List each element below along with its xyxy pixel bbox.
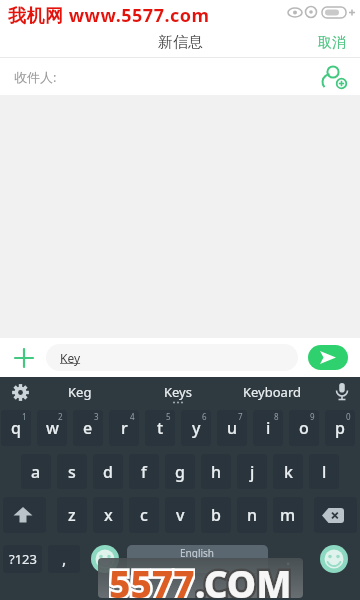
staticText: 取消 [318, 34, 346, 52]
staticText: m [280, 504, 296, 526]
staticText: t [157, 417, 164, 439]
staticText: g [175, 461, 185, 483]
button[interactable] [308, 345, 348, 370]
staticText: z [68, 504, 76, 526]
staticText: w [46, 417, 59, 439]
button[interactable]: Keg [52, 377, 108, 406]
staticText: 新信息 [158, 33, 203, 52]
staticText: u [227, 417, 238, 439]
staticText: l [322, 461, 327, 483]
button[interactable]: p [322, 406, 358, 450]
button[interactable]: j [234, 450, 270, 493]
button[interactable]: s [54, 450, 90, 493]
button[interactable]: Key [46, 344, 298, 371]
button[interactable]: c [126, 493, 162, 537]
staticText: b [211, 504, 221, 526]
staticText: English [180, 546, 215, 560]
staticText: .COM [195, 558, 292, 598]
button[interactable]: y [178, 406, 214, 450]
button[interactable]: ?123 [0, 537, 45, 581]
staticText: d [103, 461, 113, 483]
staticText: 0 [346, 411, 351, 422]
staticText: 3 [94, 411, 99, 422]
button[interactable]: a [18, 450, 54, 493]
staticText: 6 [202, 411, 207, 422]
button[interactable]: t [142, 406, 178, 450]
button[interactable]: n [234, 493, 270, 537]
staticText: Keyboard [243, 383, 302, 401]
button[interactable]: e [70, 406, 106, 450]
staticText: y [192, 417, 201, 439]
button[interactable]: z [54, 493, 90, 537]
staticText: 5577 [109, 558, 195, 598]
staticText: n [247, 504, 258, 526]
button[interactable]: b [198, 493, 234, 537]
staticText: 9 [310, 411, 315, 422]
button[interactable]: , [45, 537, 83, 581]
staticText: 我机网 www.5577.com [8, 3, 210, 28]
staticText: , [62, 548, 67, 570]
button[interactable] [8, 380, 32, 404]
staticText: 收件人: [14, 68, 57, 86]
button[interactable] [330, 380, 354, 404]
staticText: 5577 [109, 558, 195, 598]
staticText: p [335, 417, 345, 439]
button[interactable] [0, 493, 54, 537]
button[interactable]: 取消 [312, 28, 352, 57]
button[interactable]: Keys [148, 377, 208, 406]
button[interactable]: English [127, 545, 268, 573]
staticText: .COM [195, 558, 292, 598]
staticText: h [211, 461, 222, 483]
button[interactable]: r [106, 406, 142, 450]
button[interactable]: u [214, 406, 250, 450]
staticText: q [11, 417, 21, 439]
button[interactable] [12, 346, 36, 370]
staticText: 4 [130, 411, 135, 422]
button[interactable]: . [268, 537, 308, 581]
button[interactable]: f [126, 450, 162, 493]
button[interactable]: w [34, 406, 70, 450]
staticText: ?123 [9, 550, 37, 568]
staticText: 2 [58, 411, 63, 422]
staticText: r [121, 417, 128, 439]
button[interactable]: v [162, 493, 198, 537]
button[interactable]: k [270, 450, 306, 493]
staticText: Keg [68, 383, 92, 401]
button[interactable] [83, 537, 127, 581]
button[interactable]: Keyboard [236, 377, 308, 406]
button[interactable]: q [0, 406, 34, 450]
staticText: o [299, 417, 309, 439]
button[interactable]: o [286, 406, 322, 450]
button[interactable]: h [198, 450, 234, 493]
staticText: f [141, 461, 147, 483]
staticText: s [68, 461, 76, 483]
staticText: e [83, 417, 93, 439]
staticText: c [140, 504, 148, 526]
button[interactable]: x [90, 493, 126, 537]
staticText: 1 [22, 411, 27, 422]
staticText: k [284, 461, 293, 483]
staticText: 5 [166, 411, 171, 422]
button[interactable]: g [162, 450, 198, 493]
staticText: j [250, 461, 255, 483]
button[interactable] [306, 493, 360, 537]
button[interactable] [318, 61, 350, 93]
button[interactable]: l [306, 450, 342, 493]
staticText: x [104, 504, 113, 526]
staticText: 8 [274, 411, 279, 422]
staticText: i [266, 417, 271, 439]
button[interactable]: d [90, 450, 126, 493]
button[interactable]: i [250, 406, 286, 450]
staticText: . [286, 548, 291, 570]
button[interactable]: m [270, 493, 306, 537]
button[interactable] [308, 537, 360, 581]
staticText: Key [60, 350, 81, 366]
staticText: Keys [164, 383, 192, 401]
staticText: a [31, 461, 41, 483]
staticText: v [176, 504, 185, 526]
staticText: 7 [238, 411, 243, 422]
